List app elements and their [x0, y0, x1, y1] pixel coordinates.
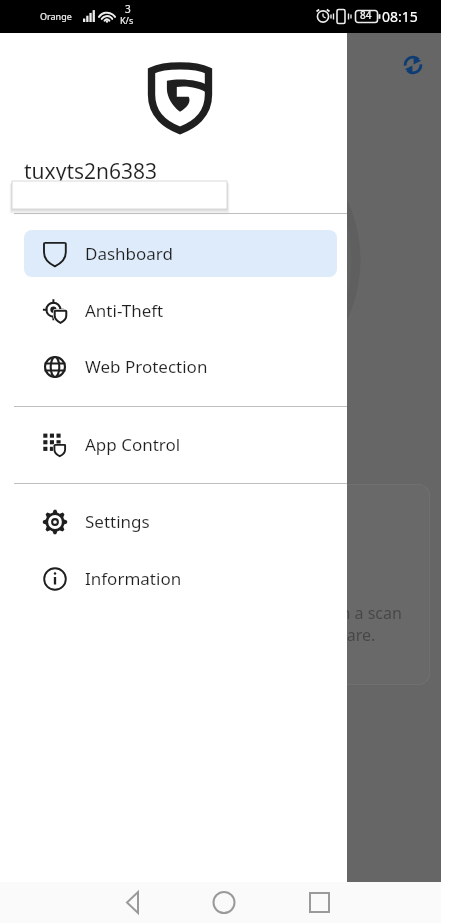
staticText: Information	[85, 567, 182, 590]
staticText: Web Protection	[85, 355, 208, 378]
button[interactable]: Anti-Theft	[24, 287, 337, 334]
staticText: App Control	[85, 433, 181, 456]
staticText: 84	[360, 8, 372, 22]
staticText: now to be sure your device is free of ma…	[31, 624, 376, 646]
button[interactable]: Refresh	[392, 44, 434, 86]
staticText: 3	[125, 2, 131, 16]
staticText: Your device has not yet been checked. Ru…	[31, 602, 402, 624]
button[interactable]: Information	[24, 555, 337, 602]
button[interactable]: Settings	[24, 498, 337, 545]
staticText: Settings	[85, 510, 150, 533]
staticText: tuxyts2n6383	[24, 157, 158, 186]
staticText: 08:15	[382, 7, 418, 26]
button[interactable]: Web Protection	[24, 343, 337, 390]
button[interactable]: Dashboard	[24, 230, 337, 277]
button[interactable]: App Control	[24, 421, 337, 468]
staticText: Dashboard	[85, 242, 174, 265]
staticText: Orange	[40, 10, 72, 22]
staticText: Anti-Theft	[85, 299, 164, 322]
staticText: K/s	[120, 14, 134, 26]
